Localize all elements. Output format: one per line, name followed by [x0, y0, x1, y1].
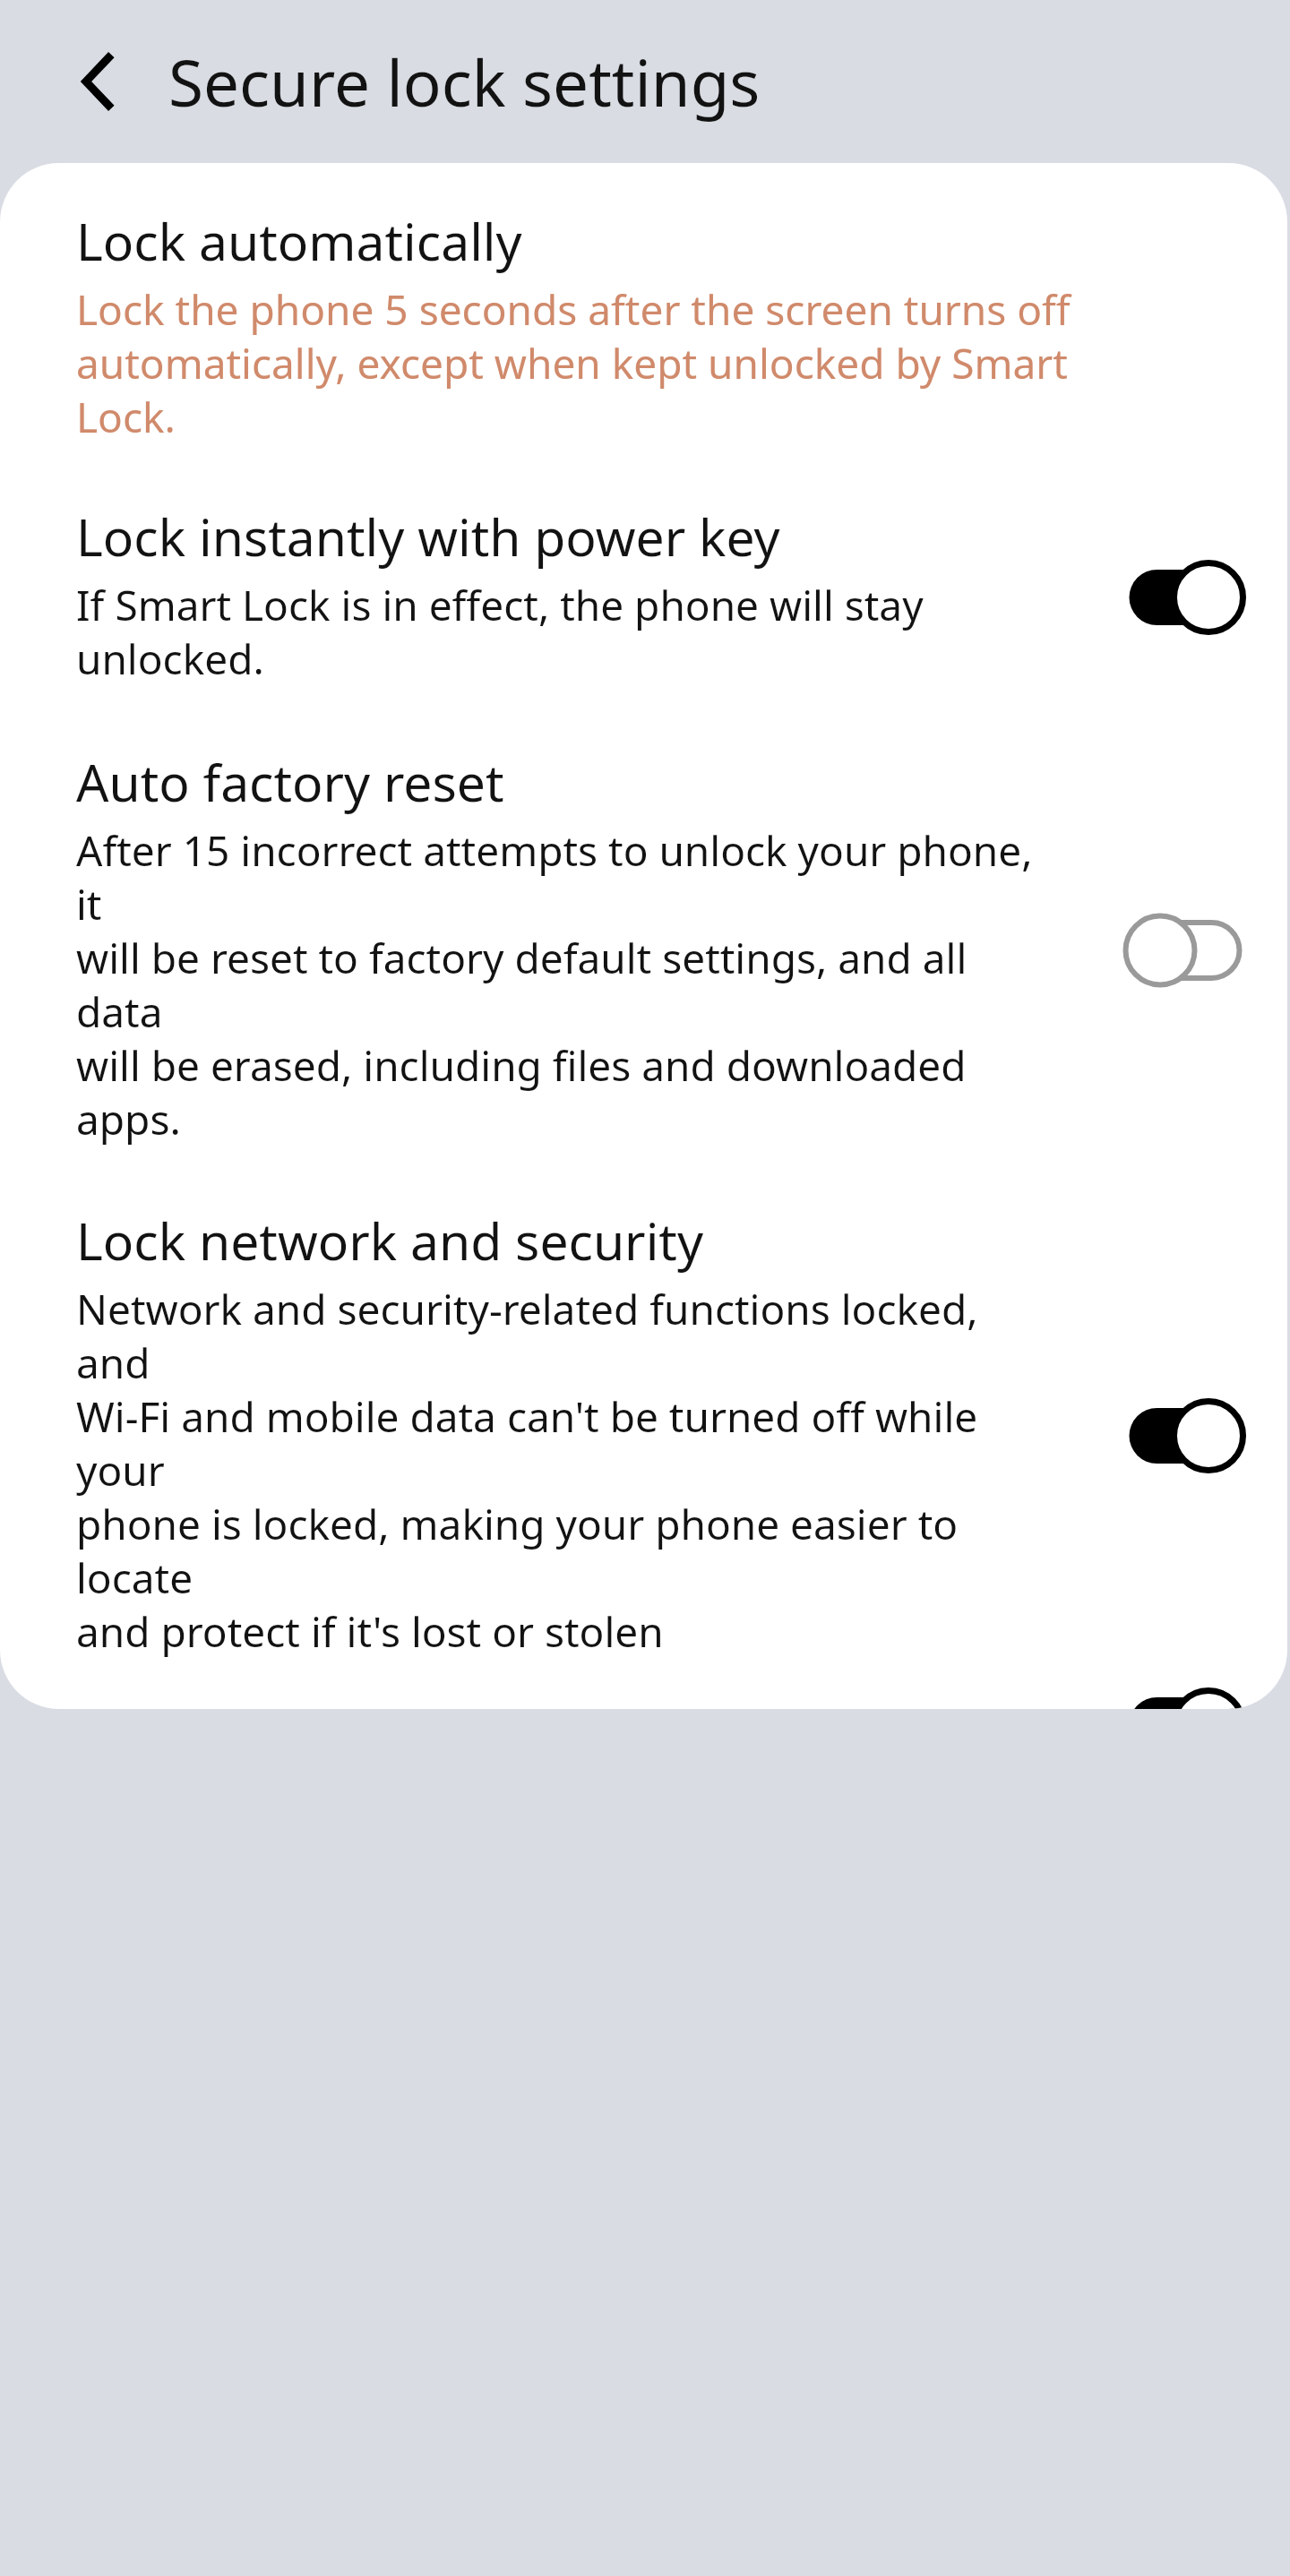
button[interactable]: Lock network and security [0, 1146, 1287, 1659]
staticText: If Smart Lock is in effect, the phone wi… [76, 579, 924, 686]
button[interactable]: Auto factory reset [0, 686, 1287, 1146]
button[interactable]: Lock instantly with power key [1108, 548, 1260, 647]
button[interactable]: Lock network and security [1108, 1387, 1260, 1485]
button[interactable]: Show Lockdown option [0, 1659, 1287, 1709]
staticText: After 15 incorrect attempts to unlock yo… [76, 824, 1044, 1146]
staticText: Lock instantly with power key [76, 509, 780, 570]
staticText: Lock network and security [76, 1213, 704, 1274]
button[interactable]: Back [36, 19, 161, 144]
staticText: Secure lock settings [168, 39, 761, 125]
button[interactable]: Lock automatically [0, 163, 1287, 444]
staticText: Lock automatically [76, 213, 522, 274]
staticText: Lock the phone 5 seconds after the scree… [76, 283, 1133, 444]
button[interactable]: Lock instantly with power key [0, 444, 1287, 686]
staticText: Network and security-related functions l… [76, 1283, 1035, 1659]
button[interactable]: Auto factory reset [1108, 901, 1260, 1000]
staticText: Auto factory reset [76, 754, 504, 815]
